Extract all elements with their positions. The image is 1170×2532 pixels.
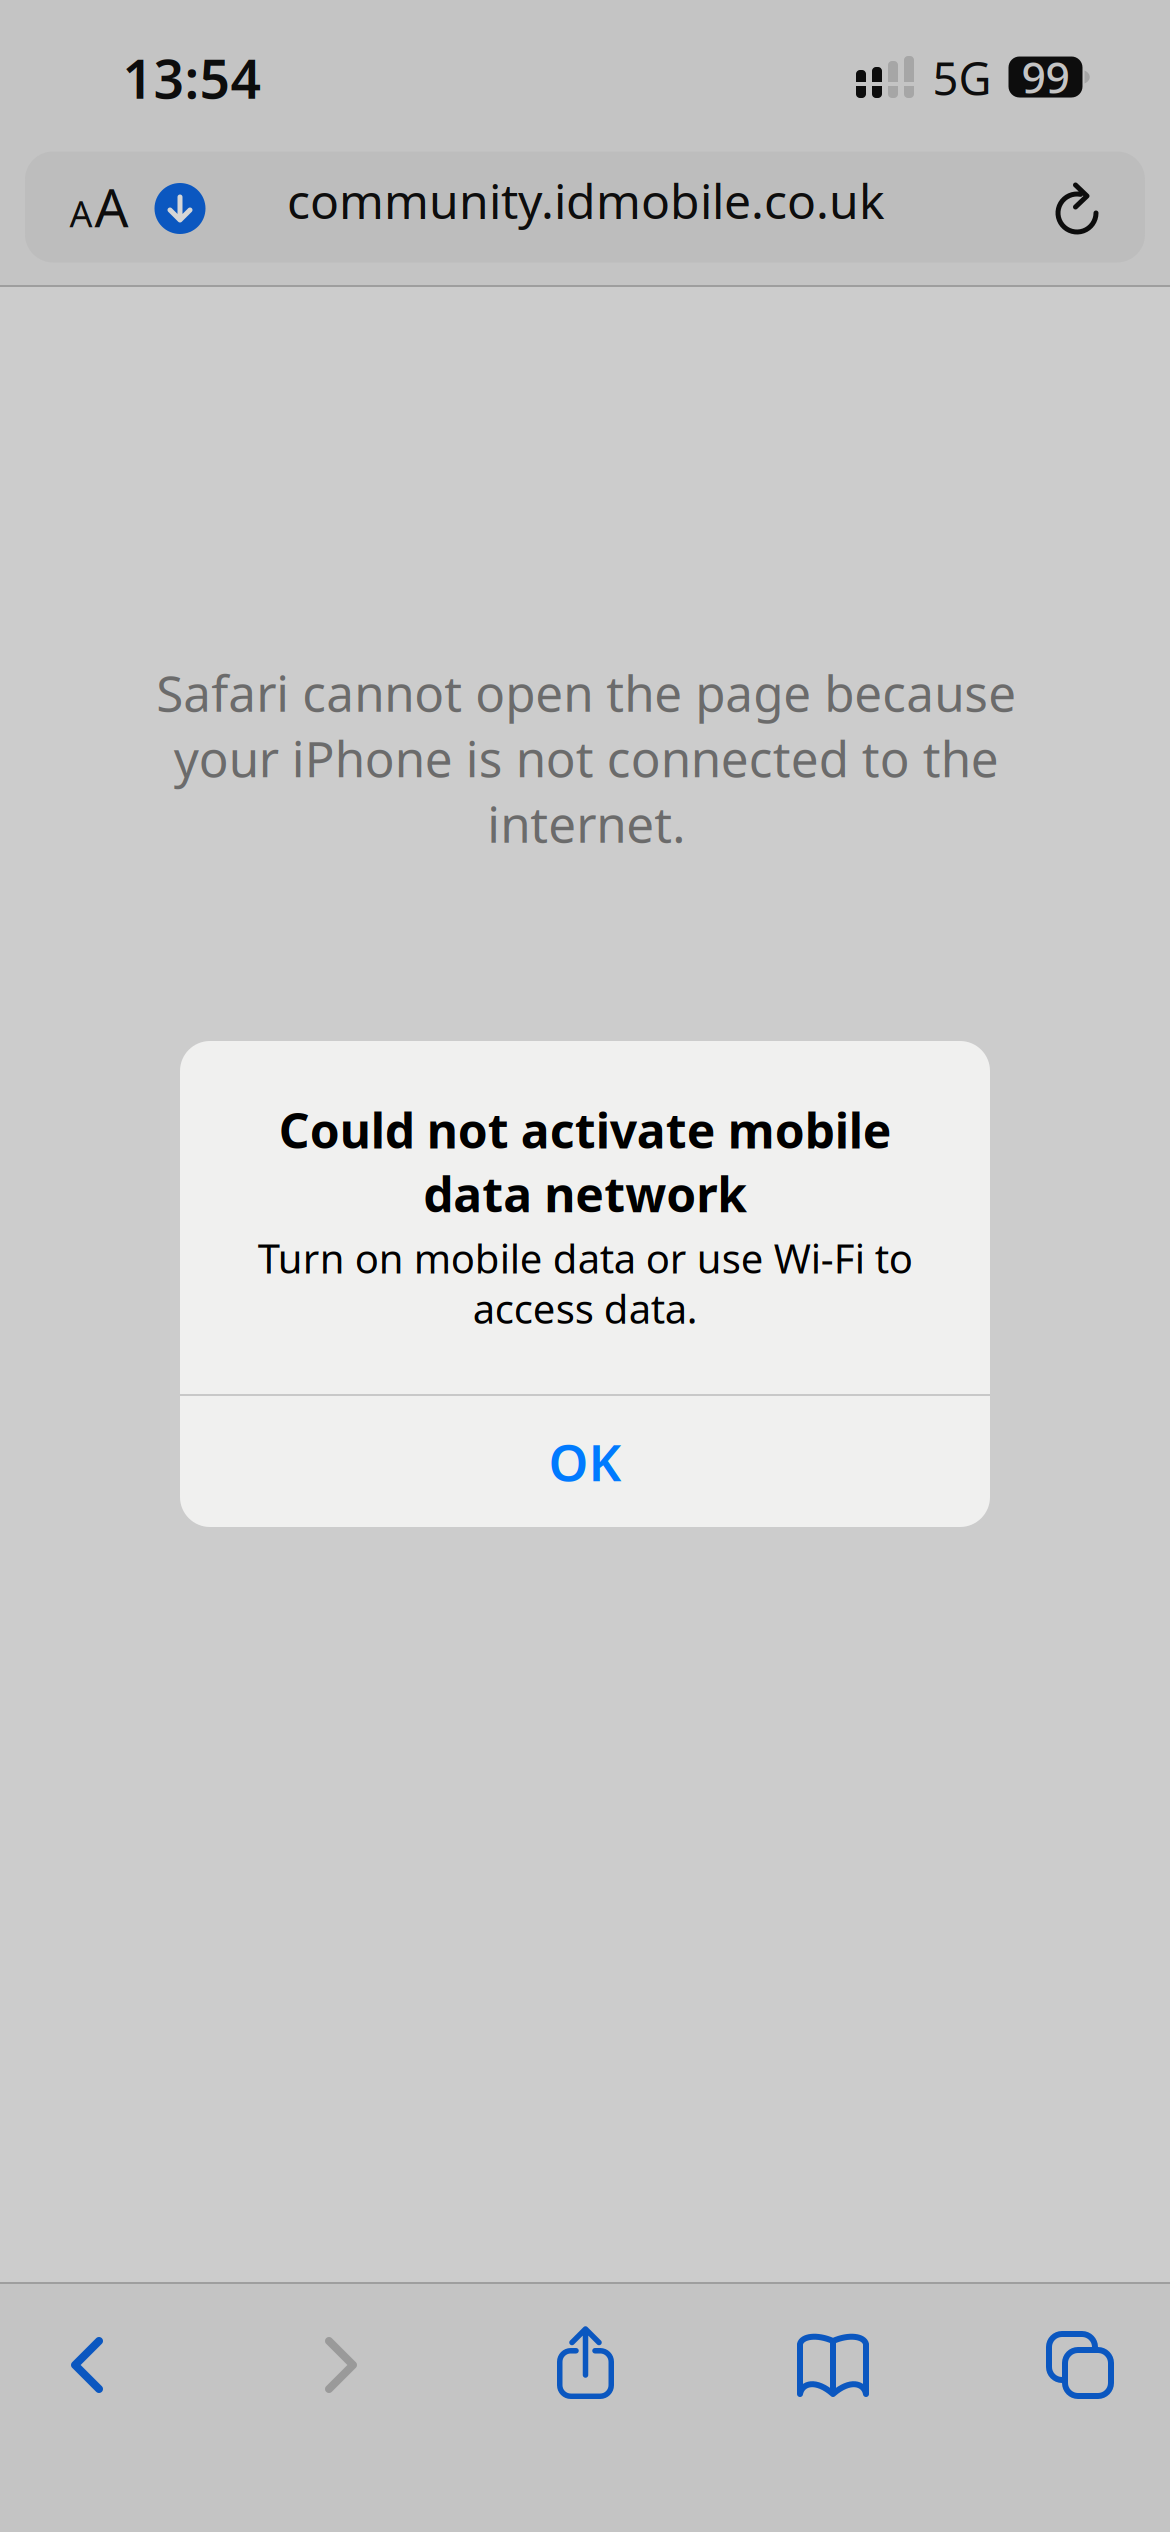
staticText: A (69, 189, 92, 237)
button[interactable]: Forward (261, 2303, 421, 2427)
button[interactable]: Address (236, 147, 936, 253)
button[interactable]: Reload (1028, 157, 1128, 263)
button[interactable]: Bookmarks (753, 2303, 913, 2427)
button[interactable]: Back (7, 2303, 167, 2427)
staticText: Could not activate mobile data network (278, 1098, 891, 1225)
button[interactable]: Downloads (141, 155, 219, 261)
staticText: 5G (932, 48, 991, 108)
staticText: A (94, 171, 128, 242)
button[interactable]: Tabs (1003, 2306, 1163, 2430)
staticText: 99 (1021, 49, 1069, 105)
button[interactable]: OK (180, 1396, 990, 1527)
staticText: Turn on mobile data or use Wi-Fi to acce… (257, 1231, 912, 1335)
button[interactable]: Text size (49, 153, 149, 259)
staticText: 13:54 (122, 43, 261, 113)
staticText: community.idmobile.co.uk (287, 169, 885, 232)
staticText: Safari cannot open the page because your… (156, 660, 1016, 856)
button[interactable]: Share (506, 2302, 666, 2426)
staticText: OK (548, 1428, 621, 1495)
